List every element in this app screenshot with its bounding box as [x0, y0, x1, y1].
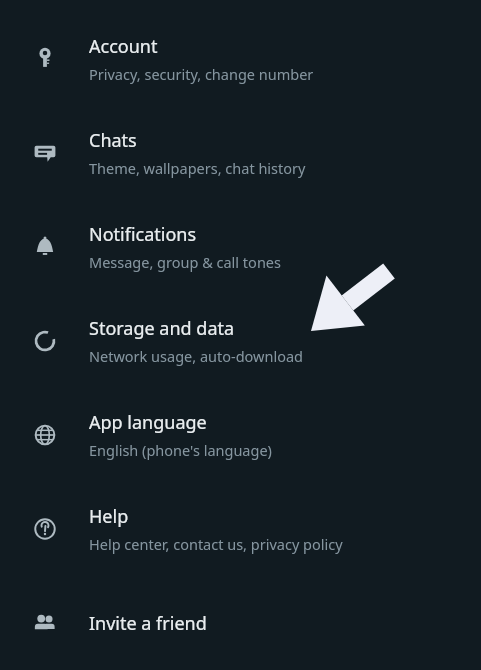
other: Chats — [32, 140, 58, 166]
other: Help — [32, 516, 58, 542]
button[interactable]: Invite a friend — [0, 576, 481, 670]
other: Account — [32, 46, 58, 72]
staticText: Account — [89, 34, 158, 59]
other: Storage and data — [32, 328, 58, 354]
button[interactable]: Chats — [0, 106, 481, 200]
staticText: Message, group & call tones — [89, 252, 281, 272]
other: Invite a friend — [32, 610, 58, 636]
button[interactable]: App language — [0, 388, 481, 482]
button[interactable]: Account — [0, 12, 481, 106]
staticText: Help center, contact us, privacy policy — [89, 534, 343, 554]
staticText: Notifications — [89, 222, 197, 247]
other: Notifications — [32, 234, 58, 260]
button[interactable]: Notifications — [0, 200, 481, 294]
staticText: Storage and data — [89, 316, 235, 341]
staticText: Help — [89, 504, 129, 529]
staticText: English (phone's language) — [89, 440, 272, 460]
other: App language — [32, 422, 58, 448]
staticText: Theme, wallpapers, chat history — [89, 158, 306, 178]
staticText: Invite a friend — [89, 611, 207, 636]
staticText: App language — [89, 410, 207, 435]
staticText: Privacy, security, change number — [89, 64, 314, 84]
button[interactable]: Help — [0, 482, 481, 576]
button[interactable]: Storage and data — [0, 294, 481, 388]
staticText: Network usage, auto-download — [89, 346, 303, 366]
staticText: Chats — [89, 128, 137, 153]
